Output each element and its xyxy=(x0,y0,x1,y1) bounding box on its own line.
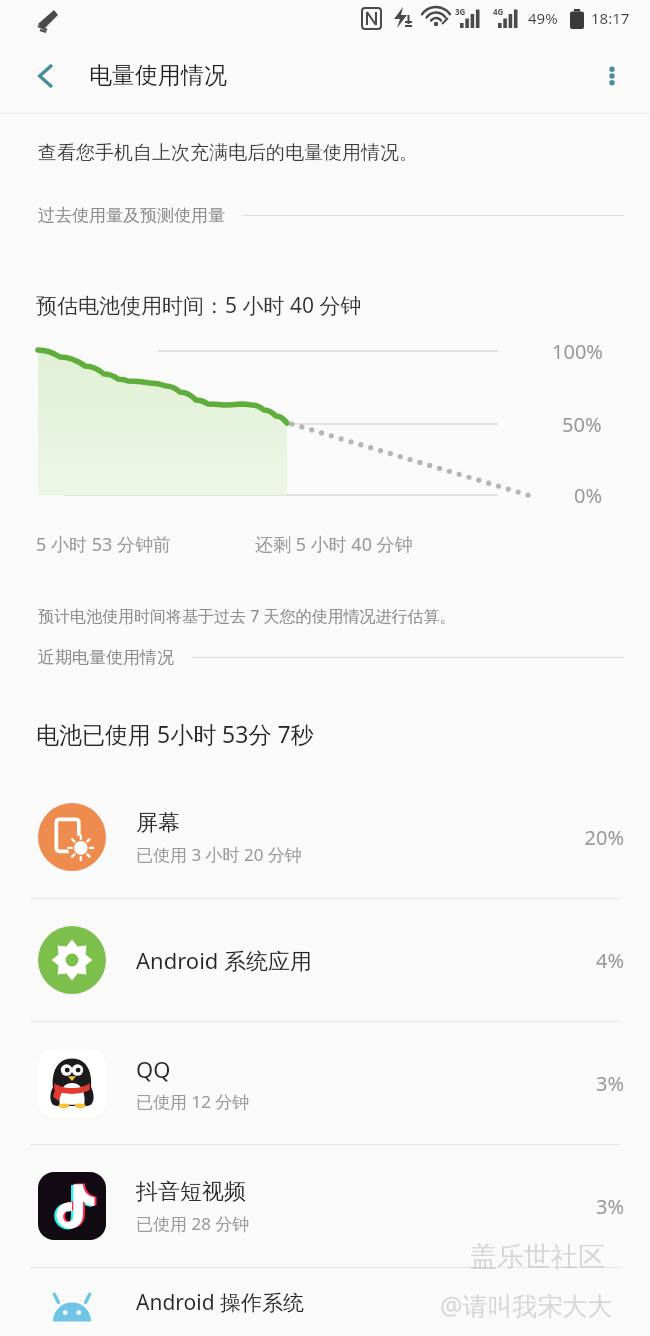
staticText: 预计电池使用时间将基于过去 7 天您的使用情况进行估算。 xyxy=(38,605,456,627)
staticText: QQ xyxy=(136,1054,171,1084)
staticText: 电池已使用 5小时 53分 7秒 xyxy=(36,718,314,749)
staticText: 查看您手机自上次充满电后的电量使用情况。 xyxy=(38,141,418,165)
staticText: 电量使用情况 xyxy=(89,61,227,90)
button[interactable]: QQ xyxy=(0,1022,650,1144)
staticText: 3G xyxy=(455,6,466,17)
staticText: 20% xyxy=(530,824,624,851)
staticText: 4% xyxy=(530,947,624,974)
staticText: Android 系统应用 xyxy=(136,945,313,975)
staticText: 4G xyxy=(493,6,504,17)
staticText: 近期电量使用情况 xyxy=(38,647,174,668)
staticText: 盖乐世社区 xyxy=(470,1240,605,1274)
staticText: @请叫我宋大大 xyxy=(440,1288,613,1322)
button[interactable]: Android 系统应用 xyxy=(0,899,650,1021)
staticText: 50% xyxy=(562,411,602,438)
staticText: 还剩 5 小时 40 分钟 xyxy=(255,532,413,557)
staticText: 3% xyxy=(530,1193,624,1220)
staticText: 预估电池使用时间：5 小时 40 分钟 xyxy=(36,291,362,320)
staticText: 5 小时 53 分钟前 xyxy=(36,532,171,557)
staticText: 100% xyxy=(552,338,603,365)
staticText: 3% xyxy=(530,1070,624,1097)
button[interactable]: 抖音短视频 xyxy=(0,1145,650,1267)
staticText: 18:17 xyxy=(591,8,630,28)
staticText: 49% xyxy=(528,8,558,28)
staticText: 0% xyxy=(574,482,603,509)
staticText: 已使用 3 小时 20 分钟 xyxy=(136,843,302,866)
staticText: Android 操作系统 xyxy=(136,1288,305,1317)
staticText: 过去使用量及预测使用量 xyxy=(38,205,225,226)
button[interactable]: 屏幕 xyxy=(0,776,650,898)
staticText: 已使用 28 分钟 xyxy=(136,1212,250,1235)
button[interactable]: Back xyxy=(18,48,74,104)
staticText: 已使用 12 分钟 xyxy=(136,1090,250,1113)
staticText: 屏幕 xyxy=(136,809,180,837)
staticText: 抖音短视频 xyxy=(136,1178,246,1206)
button[interactable]: More options xyxy=(586,50,638,102)
